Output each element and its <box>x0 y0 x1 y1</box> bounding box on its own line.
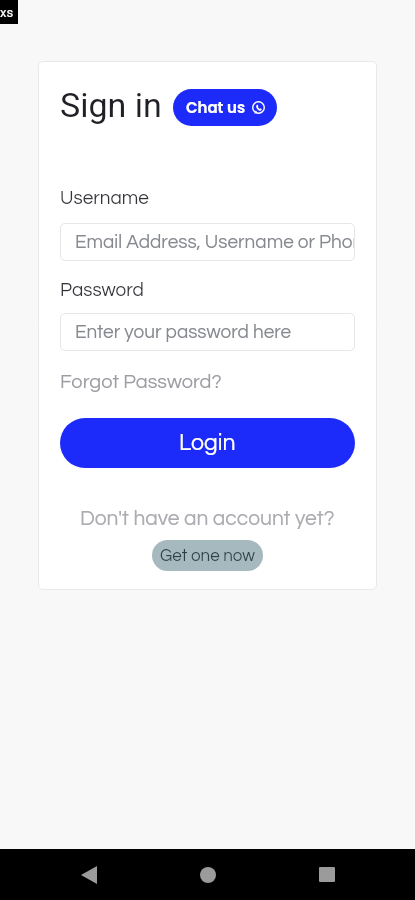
staticText: Password <box>60 280 144 300</box>
button[interactable]: Chat us <box>173 89 277 126</box>
button[interactable]: Login <box>60 418 355 468</box>
staticText: Don't have an account yet? <box>80 508 335 530</box>
button[interactable]: Recent apps <box>292 849 361 900</box>
staticText: Login <box>179 431 236 455</box>
staticText: Chat us <box>186 97 246 118</box>
staticText: Forgot Password? <box>60 372 222 393</box>
staticText: Enter your password here <box>75 322 292 342</box>
button[interactable]: Get one now <box>152 540 263 571</box>
staticText: Email Address, Username or Phone <box>75 232 355 252</box>
button[interactable]: Email Address, Username or Phone <box>60 223 355 261</box>
button[interactable]: Enter your password here <box>60 313 355 351</box>
button[interactable]: Home <box>173 849 242 900</box>
staticText: Username <box>60 188 149 208</box>
staticText: xs <box>0 5 14 20</box>
staticText: Get one now <box>160 547 255 565</box>
button[interactable]: Forgot Password? <box>60 372 222 393</box>
staticText: Sign in <box>60 85 162 125</box>
button[interactable]: Back <box>54 849 123 900</box>
